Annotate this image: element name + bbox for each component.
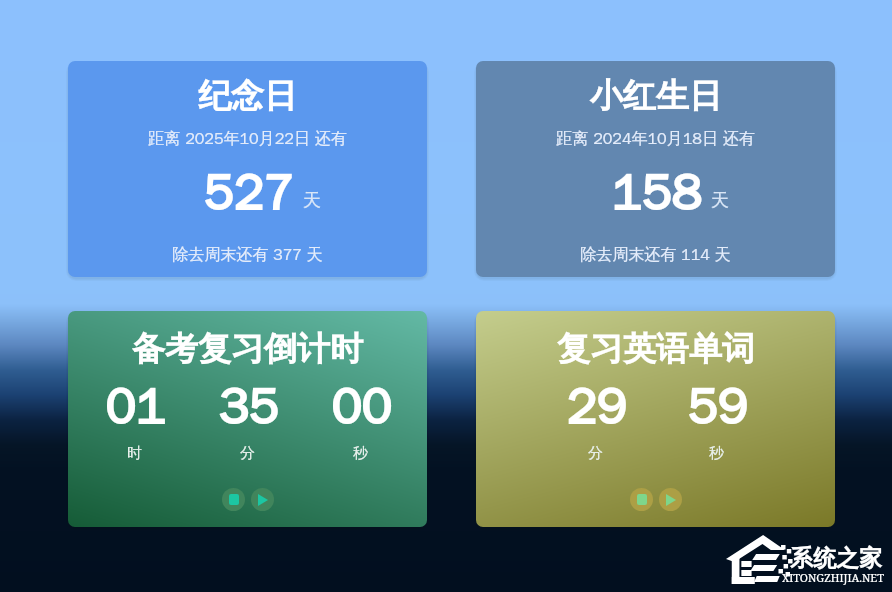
staticText: 复习英语单词: [557, 328, 755, 370]
staticText: 527: [203, 162, 293, 225]
staticText: 距离 2024年10月18日 还有: [556, 129, 755, 149]
staticText: 备考复习倒计时: [132, 328, 363, 370]
staticText: 分: [588, 444, 603, 463]
button[interactable]: 复习英语单词: [476, 311, 835, 527]
staticText: 秒: [353, 444, 368, 463]
staticText: XITONGZHIJIA.NET: [782, 570, 884, 585]
button[interactable]: 备考复习倒计时: [68, 311, 427, 527]
staticText: 59: [687, 376, 747, 439]
button[interactable]: 小红生日: [476, 61, 835, 277]
staticText: 时: [127, 444, 142, 463]
staticText: 00: [331, 376, 391, 439]
button[interactable]: Stop: [630, 488, 653, 511]
staticText: 天: [303, 189, 321, 212]
button[interactable]: Stop: [222, 488, 245, 511]
staticText: 秒: [709, 444, 724, 463]
button[interactable]: Play: [659, 488, 682, 511]
button[interactable]: 纪念日: [68, 61, 427, 277]
staticText: 分: [240, 444, 255, 463]
staticText: 系统之家: [790, 544, 882, 573]
staticText: 01: [105, 376, 165, 439]
staticText: 天: [711, 189, 729, 212]
staticText: 35: [218, 376, 278, 439]
staticText: 除去周末还有 377 天: [172, 245, 323, 265]
button[interactable]: Play: [251, 488, 274, 511]
staticText: 29: [566, 376, 626, 439]
staticText: 除去周末还有 114 天: [580, 245, 731, 265]
staticText: 距离 2025年10月22日 还有: [148, 129, 347, 149]
staticText: 158: [611, 162, 701, 225]
staticText: 纪念日: [198, 75, 297, 117]
staticText: 小红生日: [590, 75, 722, 117]
